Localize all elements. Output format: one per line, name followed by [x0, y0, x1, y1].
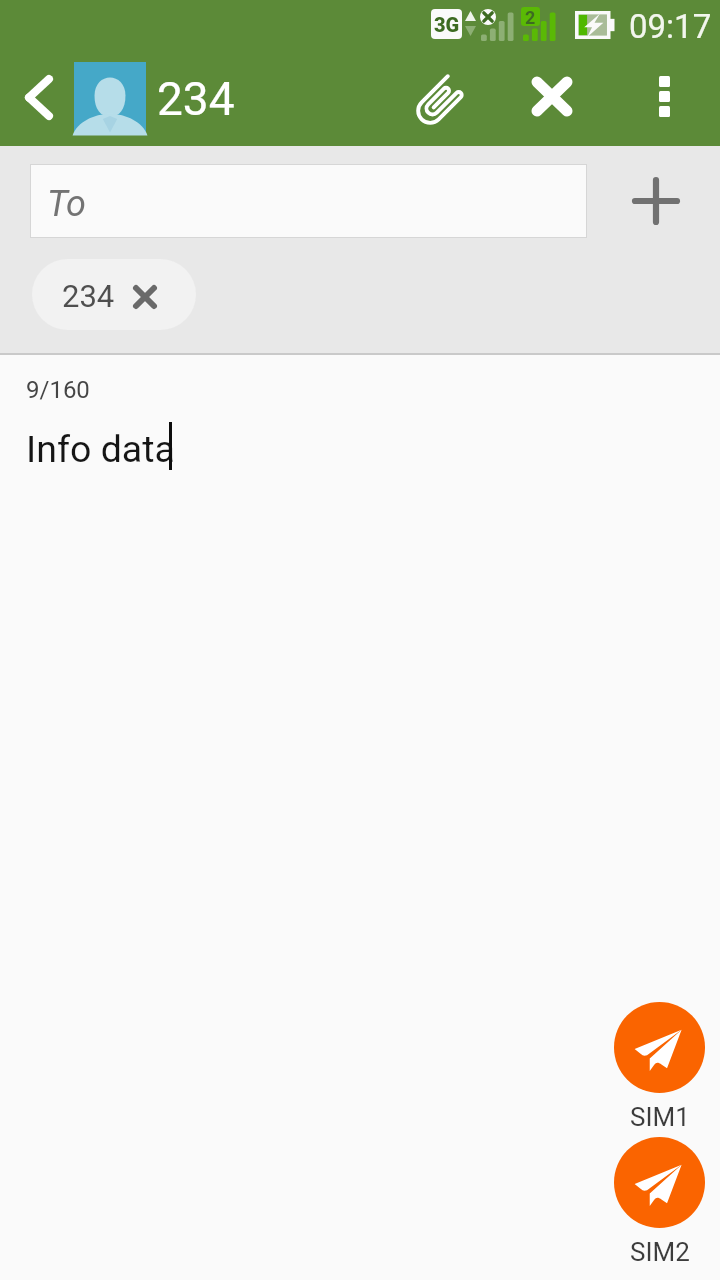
staticText: 09:17: [629, 7, 712, 46]
button[interactable]: More options: [626, 46, 702, 146]
staticText: 9/160: [26, 376, 90, 404]
button[interactable]: Attach: [396, 46, 484, 146]
staticText: 234: [62, 278, 115, 314]
button[interactable]: Send with SIM2: [614, 1137, 705, 1228]
staticText: To: [47, 183, 87, 225]
button[interactable]: To: [31, 165, 586, 237]
button[interactable]: 234: [32, 259, 196, 330]
button[interactable]: Back: [0, 46, 74, 146]
staticText: 2: [525, 7, 536, 26]
staticText: 3G: [434, 13, 460, 36]
staticText: SIM2: [630, 1237, 690, 1267]
staticText: Info data: [26, 427, 175, 471]
button[interactable]: Add recipient: [607, 164, 703, 238]
staticText: SIM1: [630, 1102, 690, 1132]
button[interactable]: Discard: [508, 46, 596, 146]
button[interactable]: Send with SIM1: [614, 1002, 705, 1093]
staticText: 234: [157, 72, 235, 126]
